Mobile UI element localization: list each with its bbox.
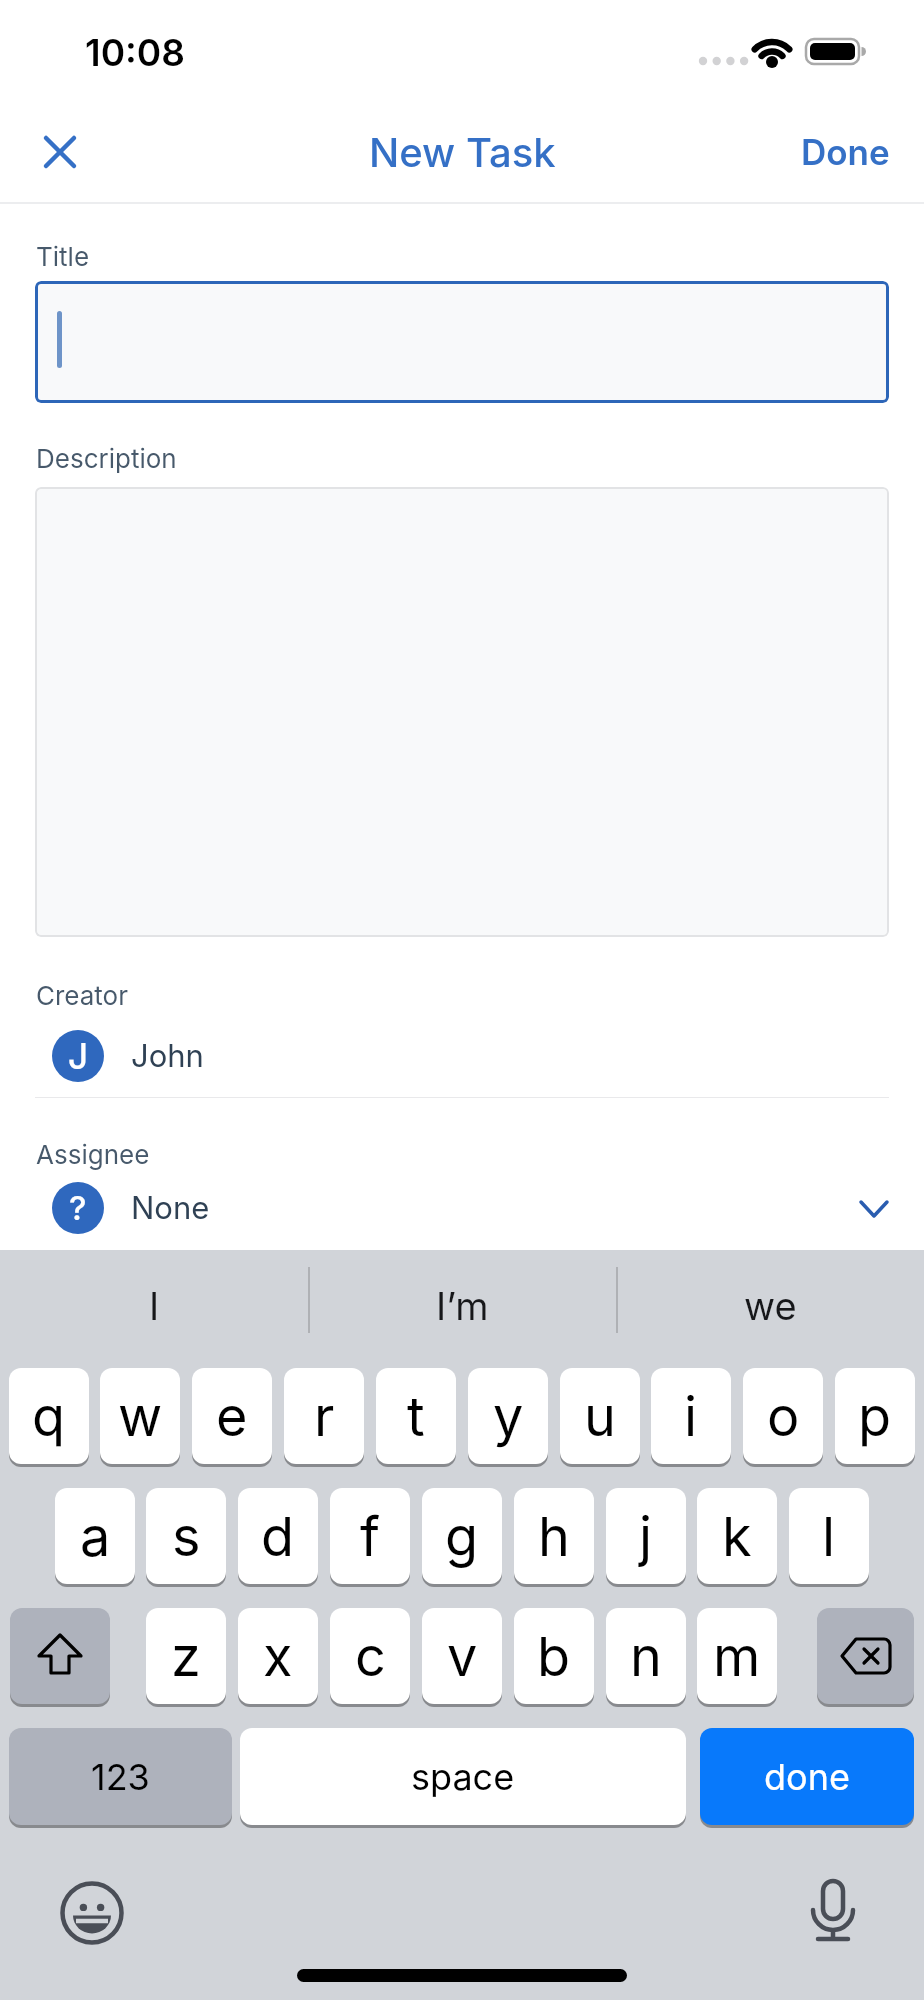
staticText: Creator — [36, 980, 128, 1011]
button[interactable]: k — [697, 1488, 777, 1584]
button[interactable]: c — [330, 1608, 410, 1704]
staticText: c — [355, 1624, 386, 1689]
button[interactable]: g — [422, 1488, 502, 1584]
button[interactable]: h — [514, 1488, 594, 1584]
button[interactable]: j — [606, 1488, 686, 1584]
staticText: 123 — [91, 1755, 150, 1799]
staticText: q — [32, 1384, 66, 1449]
button[interactable]: x — [238, 1608, 318, 1704]
button[interactable]: r — [284, 1368, 364, 1464]
staticText: None — [131, 1189, 210, 1227]
button[interactable] — [10, 1608, 110, 1704]
staticText: w — [118, 1384, 163, 1449]
staticText: Done — [801, 131, 890, 173]
staticText: g — [445, 1504, 479, 1569]
staticText: m — [713, 1624, 761, 1689]
button[interactable]: s — [146, 1488, 226, 1584]
staticText: t — [407, 1384, 425, 1449]
button[interactable]: f — [330, 1488, 410, 1584]
button[interactable]: done — [700, 1728, 914, 1825]
staticText: s — [172, 1504, 201, 1569]
staticText: h — [538, 1504, 570, 1569]
button[interactable]: v — [422, 1608, 502, 1704]
staticText: done — [764, 1755, 850, 1799]
staticText: we — [744, 1283, 797, 1329]
staticText: v — [447, 1624, 478, 1689]
staticText: I’m — [436, 1283, 489, 1329]
staticText: l — [822, 1504, 836, 1569]
button[interactable]: q — [9, 1368, 89, 1464]
staticText: y — [493, 1384, 524, 1449]
staticText: d — [261, 1504, 295, 1569]
button[interactable]: ? — [35, 1181, 889, 1235]
staticText: f — [360, 1504, 380, 1569]
staticText: o — [767, 1384, 800, 1449]
button[interactable]: n — [606, 1608, 686, 1704]
button[interactable] — [35, 281, 889, 403]
staticText: r — [314, 1384, 335, 1449]
button[interactable] — [817, 1608, 914, 1704]
button[interactable]: d — [238, 1488, 318, 1584]
button[interactable]: m — [697, 1608, 777, 1704]
staticText: I — [149, 1283, 160, 1329]
button[interactable]: we — [616, 1254, 924, 1358]
staticText: n — [630, 1624, 662, 1689]
staticText: b — [537, 1624, 571, 1689]
button[interactable]: o — [743, 1368, 823, 1464]
button[interactable] — [32, 124, 88, 180]
staticText: New Task — [369, 128, 556, 176]
staticText: John — [131, 1037, 204, 1075]
button[interactable]: 123 — [9, 1728, 232, 1825]
button[interactable]: i — [651, 1368, 731, 1464]
button[interactable]: a — [55, 1488, 135, 1584]
button[interactable]: l — [789, 1488, 869, 1584]
staticText: u — [584, 1384, 616, 1449]
staticText: Assignee — [36, 1139, 150, 1170]
staticText: Title — [36, 241, 90, 272]
button[interactable]: space — [240, 1728, 686, 1825]
staticText: x — [263, 1624, 293, 1689]
button[interactable]: p — [835, 1368, 915, 1464]
button[interactable] — [58, 1879, 126, 1947]
button[interactable]: I — [0, 1254, 308, 1358]
staticText: a — [80, 1504, 111, 1569]
staticText: 10:08 — [85, 30, 185, 74]
staticText: z — [171, 1624, 201, 1689]
button[interactable]: Done — [790, 124, 900, 180]
button[interactable]: w — [100, 1368, 180, 1464]
button[interactable]: t — [376, 1368, 456, 1464]
button[interactable]: y — [468, 1368, 548, 1464]
button[interactable]: u — [560, 1368, 640, 1464]
button[interactable]: b — [514, 1608, 594, 1704]
staticText: space — [411, 1755, 515, 1799]
staticText: j — [639, 1504, 653, 1569]
staticText: p — [858, 1384, 892, 1449]
button[interactable] — [800, 1875, 866, 1947]
staticText: ? — [69, 1188, 87, 1228]
staticText: Description — [36, 443, 177, 474]
staticText: J — [68, 1035, 89, 1077]
button[interactable]: z — [146, 1608, 226, 1704]
staticText: e — [216, 1384, 248, 1449]
button[interactable]: e — [192, 1368, 272, 1464]
staticText: k — [722, 1504, 752, 1569]
staticText: i — [684, 1384, 698, 1449]
button[interactable]: I’m — [308, 1254, 616, 1358]
